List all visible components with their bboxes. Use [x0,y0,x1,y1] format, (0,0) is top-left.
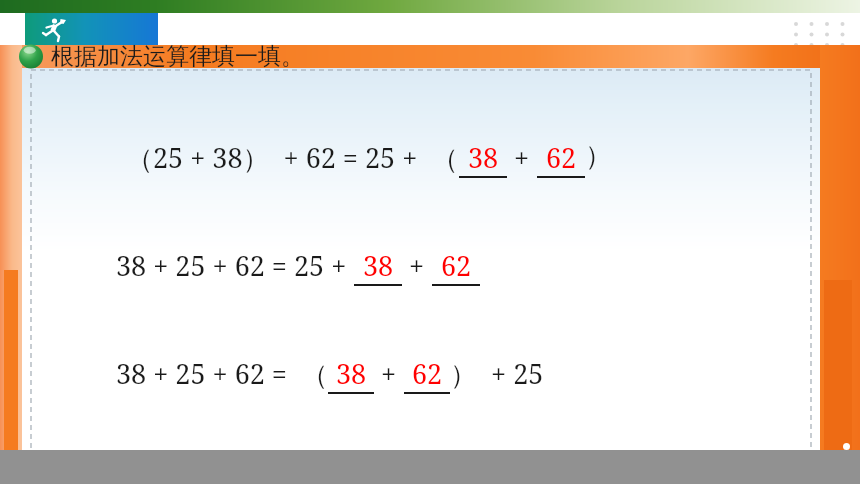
staticText: ） + 25 [450,355,544,392]
button[interactable]: 根据加法运算律填一填。 [18,41,304,71]
staticText: ） [585,139,612,173]
staticText: 根据加法运算律填一填。 [51,42,304,71]
staticText: 38 [468,139,499,176]
staticText: + [402,247,432,284]
staticText: 38 [363,247,394,284]
staticText: 62 [412,355,443,392]
button[interactable]: Logo [25,13,158,46]
staticText: + [374,355,404,392]
staticText: 62 [546,139,577,176]
staticText: + [507,139,537,176]
staticText: 38 + 25 + 62 = 25 + [116,247,354,284]
staticText: 38 [336,355,367,392]
staticText: （25 + 38） + 62 = 25 + （ [126,139,459,176]
staticText: 62 [441,247,472,284]
staticText: 38 + 25 + 62 = （ [116,355,328,392]
